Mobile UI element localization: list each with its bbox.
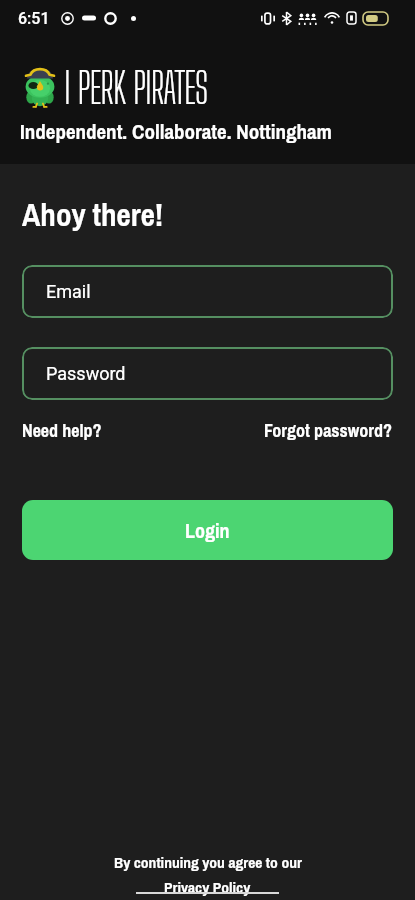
staticText: Email [46, 281, 91, 302]
staticText: Privacy Policy [164, 877, 251, 898]
staticText: By continuing you agree to our [114, 852, 302, 873]
staticText: Login [185, 517, 230, 544]
button[interactable]: Login [22, 500, 393, 560]
button[interactable]: Password [22, 347, 393, 400]
button[interactable]: Privacy Policy [136, 877, 279, 898]
button[interactable]: Email [22, 265, 393, 318]
button[interactable]: Need help? [22, 418, 102, 442]
staticText: 6:51 [18, 9, 50, 28]
staticText: Independent. Collaborate. Nottingham [20, 117, 332, 145]
button[interactable]: Forgot password? [264, 418, 393, 442]
staticText: I PERK PIRATES [64, 62, 208, 113]
staticText: Password [46, 363, 126, 384]
staticText: Ahoy there! [22, 194, 164, 236]
